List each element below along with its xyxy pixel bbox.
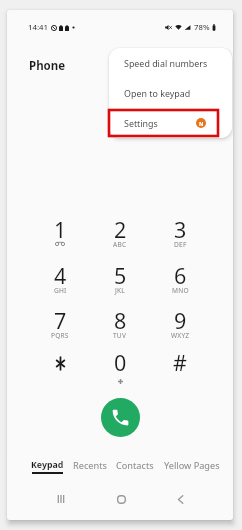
staticText: TUV (113, 331, 127, 340)
staticText: 9 (174, 306, 187, 335)
staticText: # (173, 348, 187, 377)
staticText: Keypad (31, 459, 64, 471)
staticText: 78% (194, 22, 210, 33)
button[interactable]: Yellow Pages (157, 456, 227, 480)
button[interactable]: # (150, 331, 210, 375)
button[interactable]: Speed dial numbers (109, 48, 232, 78)
button[interactable]: 8 (90, 289, 150, 333)
staticText: Recents (73, 459, 107, 472)
button[interactable]: Open to keypad (109, 78, 232, 108)
staticText: 6 (174, 261, 187, 290)
staticText: DEF (174, 240, 187, 249)
staticText: Settings (124, 117, 158, 129)
staticText: 5 (114, 261, 127, 290)
staticText: 1 (54, 215, 67, 244)
staticText: Phone (29, 58, 66, 74)
staticText: Speed dial numbers (124, 57, 208, 69)
button[interactable]: Contacts (109, 456, 161, 480)
staticText: 3 (174, 215, 187, 244)
button[interactable]: Keypad (25, 456, 69, 480)
staticText: 14:41 (28, 22, 48, 33)
button[interactable]: 4 (30, 244, 90, 288)
staticText: N (199, 120, 204, 127)
staticText: ABC (113, 240, 127, 249)
staticText: Yellow Pages (164, 459, 220, 472)
staticText: 8 (114, 306, 127, 335)
staticText: 7 (54, 306, 67, 335)
button[interactable] (30, 331, 90, 375)
button[interactable]: Recents (66, 456, 114, 480)
staticText: PQRS (51, 331, 69, 340)
staticText: GHI (54, 286, 67, 295)
staticText: Contacts (116, 459, 154, 472)
button[interactable]: 5 (90, 244, 150, 288)
staticText: MNO (172, 286, 189, 295)
button[interactable]: Settings (109, 108, 232, 138)
button[interactable]: Call (101, 398, 140, 437)
button[interactable]: 1 (30, 198, 90, 242)
button[interactable]: Back (169, 488, 191, 510)
button[interactable]: 9 (150, 289, 210, 333)
button[interactable]: 7 (30, 289, 90, 333)
button[interactable]: 3 (150, 198, 210, 242)
button[interactable]: 0 (90, 331, 150, 375)
staticText: JKL (115, 286, 125, 295)
staticText: 2 (114, 215, 127, 244)
button[interactable]: Home (110, 488, 132, 510)
staticText: 4 (54, 261, 67, 290)
button[interactable]: 2 (90, 198, 150, 242)
button[interactable]: Recent apps (50, 488, 72, 510)
staticText: 0 (114, 348, 127, 377)
button[interactable]: 6 (150, 244, 210, 288)
staticText: WXYZ (171, 331, 190, 340)
other: Settings highlight (109, 110, 218, 136)
staticText: Open to keypad (124, 87, 191, 99)
